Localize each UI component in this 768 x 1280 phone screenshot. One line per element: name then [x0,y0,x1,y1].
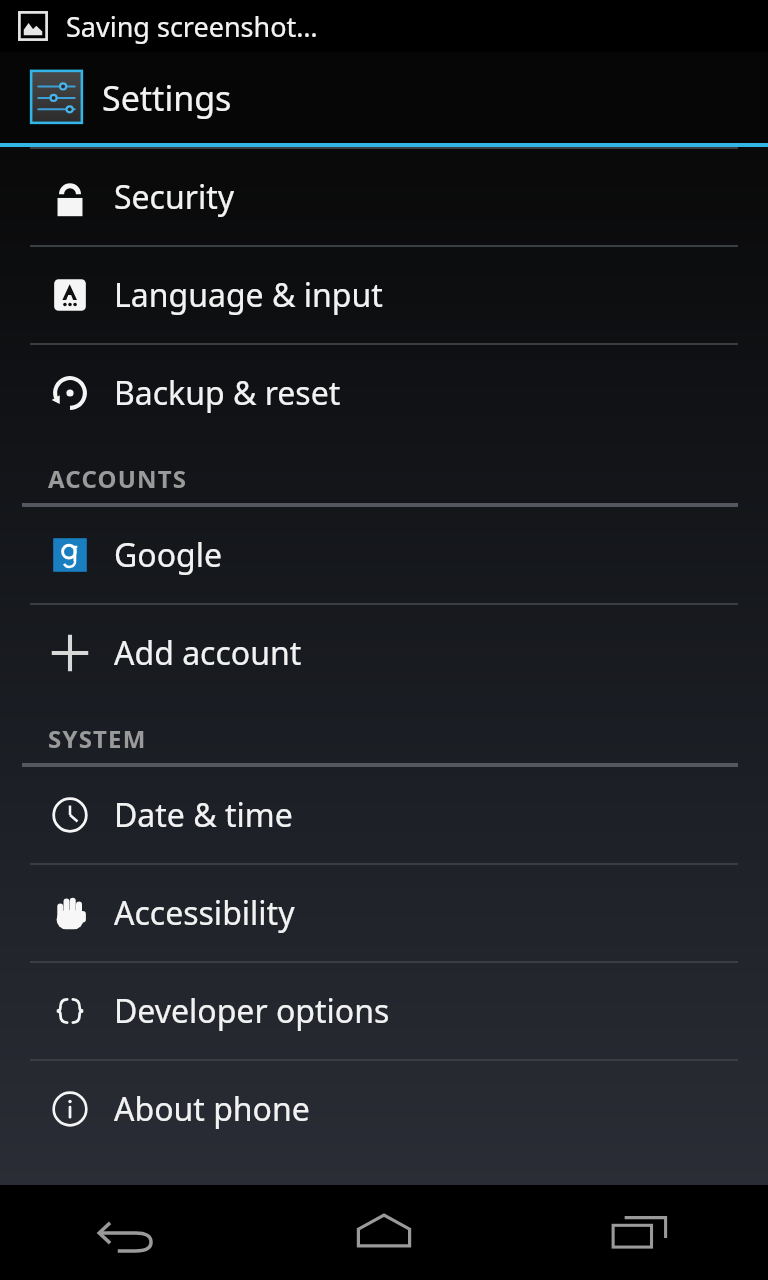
button[interactable]: Add account [0,605,768,701]
button[interactable]: Developer options [0,963,768,1059]
staticText: Add account [114,631,302,675]
button[interactable]: Home [256,1185,512,1280]
staticText: SYSTEM [48,722,147,755]
staticText: Developer options [114,989,390,1033]
button[interactable]: About phone [0,1061,768,1157]
button[interactable]: Accessibility [0,865,768,961]
staticText: Settings [102,75,232,121]
staticText: Google [114,533,223,577]
button[interactable]: Date & time [0,767,768,863]
staticText: Date & time [114,793,293,837]
button[interactable]: Security [0,149,768,245]
button[interactable]: Google [0,507,768,603]
staticText: Accessibility [114,891,295,935]
staticText: Saving screenshot… [66,8,318,45]
staticText: Language & input [114,273,383,317]
button[interactable]: Backup & reset [0,345,768,441]
staticText: ACCOUNTS [48,462,188,495]
button[interactable]: Language & input [0,247,768,343]
button[interactable]: Back [0,1185,256,1280]
staticText: Security [114,175,235,219]
staticText: About phone [114,1087,310,1131]
button[interactable]: Recent apps [512,1185,768,1280]
staticText: Backup & reset [114,371,341,415]
